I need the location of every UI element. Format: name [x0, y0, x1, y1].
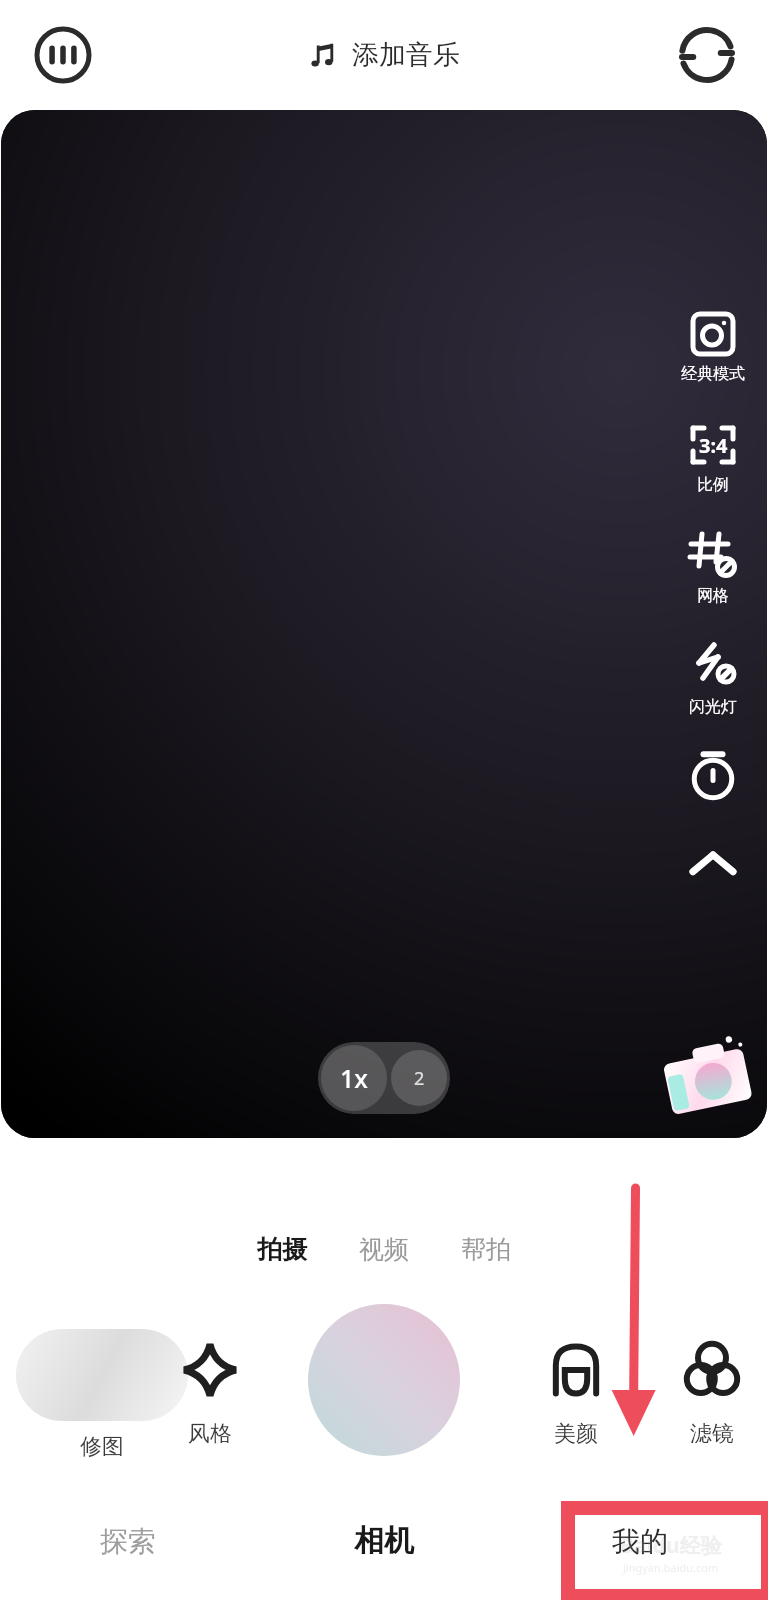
button[interactable]: 探索	[0, 1482, 256, 1600]
button[interactable]: 滤镜	[672, 1342, 752, 1448]
button[interactable]: 网格	[665, 527, 761, 610]
button[interactable]: Switch camera	[678, 26, 736, 84]
button[interactable]: 相机	[256, 1482, 512, 1600]
staticText: 比例	[697, 475, 729, 495]
button[interactable]: 拍摄	[243, 1228, 321, 1271]
staticText: 拍摄	[257, 1234, 307, 1265]
staticText: 相机	[354, 1522, 414, 1560]
button[interactable]: Expand more options	[685, 837, 741, 893]
button[interactable]: Sticker	[655, 1026, 759, 1130]
staticText: 添加音乐	[352, 38, 460, 72]
button[interactable]: 帮拍	[447, 1228, 525, 1271]
staticText: 风格	[188, 1420, 232, 1448]
staticText: 视频	[359, 1234, 409, 1265]
button[interactable]: 我的	[512, 1482, 768, 1600]
staticText: 美颜	[554, 1420, 598, 1448]
staticText: 探索	[100, 1524, 156, 1559]
button[interactable]: 3:4	[665, 416, 761, 499]
button[interactable]: More options	[34, 26, 92, 84]
button[interactable]: 经典模式	[1, 110, 767, 1138]
button[interactable]: 1x	[321, 1045, 387, 1111]
staticText: 修图	[80, 1433, 124, 1461]
button[interactable]: 添加音乐	[302, 32, 466, 78]
staticText: 我的	[612, 1524, 668, 1559]
button[interactable]: 2	[391, 1050, 447, 1106]
button[interactable]: 经典模式	[665, 305, 761, 388]
button[interactable]: 闪光灯	[665, 638, 761, 721]
button[interactable]: 美颜	[536, 1342, 616, 1448]
staticText: 1x	[340, 1061, 368, 1095]
staticText: Baidu经验	[620, 1531, 722, 1560]
staticText: 帮拍	[461, 1234, 511, 1265]
staticText: 3:4	[699, 432, 728, 459]
staticText: 网格	[697, 586, 729, 606]
button[interactable]: 视频	[345, 1228, 423, 1271]
button[interactable]: Timer	[685, 747, 741, 803]
button[interactable]: 修图	[16, 1329, 188, 1461]
button[interactable]: Shutter	[308, 1304, 460, 1456]
button[interactable]: 风格	[178, 1342, 242, 1448]
staticText: jingyan.baidu.com	[623, 1560, 719, 1575]
staticText: 滤镜	[690, 1420, 734, 1448]
staticText: 经典模式	[681, 364, 745, 384]
staticText: 闪光灯	[689, 697, 737, 717]
staticText: 2	[414, 1066, 425, 1091]
